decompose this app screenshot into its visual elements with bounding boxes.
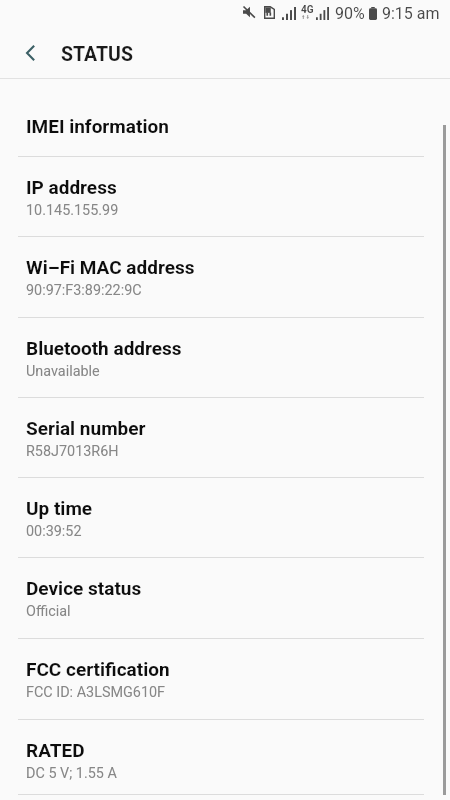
staticText: Official <box>26 603 71 620</box>
button[interactable]: RATED <box>0 720 450 795</box>
staticText: 90:97:F3:89:22:9C <box>26 282 142 299</box>
staticText: RATED <box>26 739 85 761</box>
staticText: FCC ID: A3LSMG610F <box>26 684 166 701</box>
staticText: IMEI information <box>26 115 169 137</box>
button[interactable]: IP address <box>0 157 450 237</box>
staticText: DC 5 V; 1.55 A <box>26 765 117 782</box>
staticText: Bluetooth address <box>26 337 182 359</box>
button[interactable]: Bluetooth address <box>0 318 450 398</box>
staticText: 00:39:52 <box>26 523 82 540</box>
button[interactable]: Up time <box>0 478 450 558</box>
button[interactable]: Wi–Fi MAC address <box>0 237 450 318</box>
staticText: 4G <box>301 4 314 16</box>
staticText: Up time <box>26 497 93 519</box>
staticText: 10.145.155.99 <box>26 202 119 219</box>
button[interactable]: Device status <box>0 558 450 639</box>
staticText: 9:15 am <box>382 4 440 23</box>
staticText: STATUS <box>61 43 133 66</box>
staticText: Device status <box>26 577 142 599</box>
button[interactable]: Serial number <box>0 398 450 478</box>
staticText: IP address <box>26 176 117 198</box>
button[interactable]: IMEI information <box>0 79 450 157</box>
staticText: 90% <box>335 4 365 23</box>
staticText: FCC certification <box>26 658 170 680</box>
staticText: Serial number <box>26 417 146 439</box>
button[interactable]: Back <box>8 31 52 75</box>
staticText: Wi–Fi MAC address <box>26 256 195 278</box>
button[interactable]: FCC certification <box>0 639 450 720</box>
staticText: R58J7013R6H <box>26 443 119 460</box>
staticText: Unavailable <box>26 363 100 380</box>
